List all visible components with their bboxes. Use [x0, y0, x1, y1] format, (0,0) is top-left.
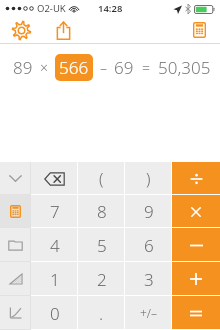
button[interactable]: 5	[78, 228, 125, 262]
button[interactable]: .	[78, 296, 125, 330]
staticText: 50,305	[158, 56, 211, 79]
staticText: ×	[40, 58, 48, 77]
staticText: 7	[50, 200, 60, 223]
button[interactable]: +/–	[125, 296, 172, 330]
staticText: (	[99, 168, 104, 190]
button[interactable]: 9	[125, 195, 172, 228]
button[interactable]: 4	[31, 228, 78, 262]
staticText: 8	[97, 200, 107, 223]
staticText: 89	[13, 56, 33, 79]
staticText: 6	[144, 234, 154, 257]
button[interactable]: Hide keypad	[0, 162, 31, 195]
button[interactable]: Geometry	[0, 262, 31, 296]
button[interactable]: Graph	[0, 296, 31, 330]
staticText: 2	[97, 268, 107, 291]
button[interactable]: Multiply	[172, 195, 220, 228]
button[interactable]: Equals	[172, 296, 220, 330]
button[interactable]: Saved files	[0, 228, 31, 262]
staticText: 4	[50, 234, 60, 257]
button[interactable]: Calculator mode	[178, 17, 220, 43]
button[interactable]: Subtract	[172, 228, 220, 262]
staticText: 3	[144, 268, 154, 291]
button[interactable]: 0	[31, 296, 78, 330]
staticText: 566	[59, 56, 89, 79]
staticText: 9	[144, 200, 154, 223]
staticText: 1	[50, 268, 60, 291]
staticText: 14:28	[98, 2, 123, 15]
button[interactable]: )	[125, 162, 172, 195]
button[interactable]	[31, 162, 78, 195]
button[interactable]: (	[78, 162, 125, 195]
button[interactable]: 89	[0, 44, 220, 90]
staticText: 5	[97, 234, 107, 257]
button[interactable]: Add	[172, 262, 220, 296]
staticText: .	[99, 302, 104, 325]
staticText: O2-UK	[37, 2, 66, 15]
button[interactable]: 3	[125, 262, 172, 296]
button[interactable]: Settings	[0, 17, 42, 43]
staticText: 69	[114, 56, 134, 79]
staticText: =	[142, 58, 150, 77]
button[interactable]: 2	[78, 262, 125, 296]
button[interactable]: 7	[31, 195, 78, 228]
button[interactable]: 8	[78, 195, 125, 228]
button[interactable]: Calculator	[0, 195, 31, 228]
button[interactable]: 1	[31, 262, 78, 296]
staticText: –	[100, 58, 107, 77]
button[interactable]: Share	[42, 17, 84, 43]
staticText: )	[146, 168, 151, 190]
button[interactable]: Divide	[172, 162, 220, 195]
staticText: +/–	[140, 305, 158, 321]
staticText: 0	[50, 302, 60, 325]
button[interactable]: 6	[125, 228, 172, 262]
